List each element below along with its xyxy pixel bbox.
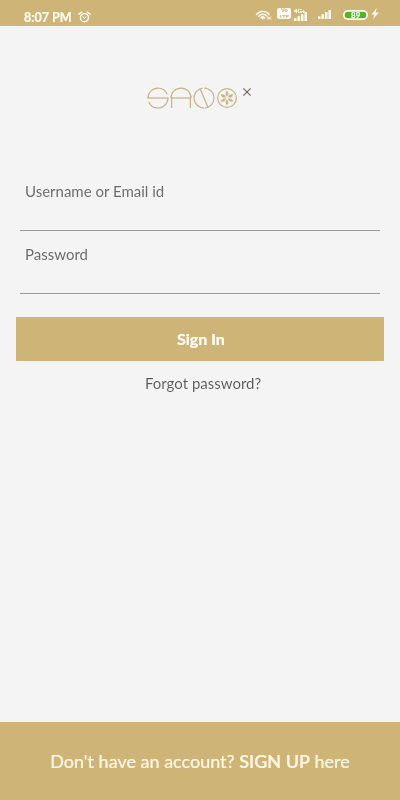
staticText: 8:07 PM bbox=[24, 10, 72, 25]
staticText: Vo bbox=[281, 7, 288, 14]
staticText: Password bbox=[25, 245, 88, 263]
other: Alarm bbox=[78, 11, 91, 22]
other: Mobile signal bbox=[318, 10, 331, 19]
other: Wi-Fi bbox=[255, 9, 272, 20]
other: Battery 89 percent bbox=[343, 10, 368, 20]
staticText: Don't have an account? SIGN UP here bbox=[50, 750, 350, 772]
button[interactable]: Don't have an account? SIGN UP here bbox=[0, 722, 400, 800]
staticText: Sign In bbox=[177, 329, 225, 348]
other: Mobile signal 4G+ bbox=[294, 7, 313, 21]
staticText: Forgot password? bbox=[145, 374, 262, 392]
button[interactable]: Sign In bbox=[16, 317, 384, 361]
button[interactable]: Forgot password? bbox=[133, 369, 274, 397]
button[interactable]: Username or Email id bbox=[20, 183, 380, 231]
button[interactable]: Password bbox=[20, 246, 380, 294]
staticText: 4G+ bbox=[294, 7, 306, 14]
other: VoLTE bbox=[277, 8, 291, 19]
staticText: 89 bbox=[351, 10, 361, 20]
staticText: LTE bbox=[280, 14, 289, 18]
other: Charging bbox=[371, 8, 379, 19]
staticText: Username or Email id bbox=[25, 182, 165, 200]
